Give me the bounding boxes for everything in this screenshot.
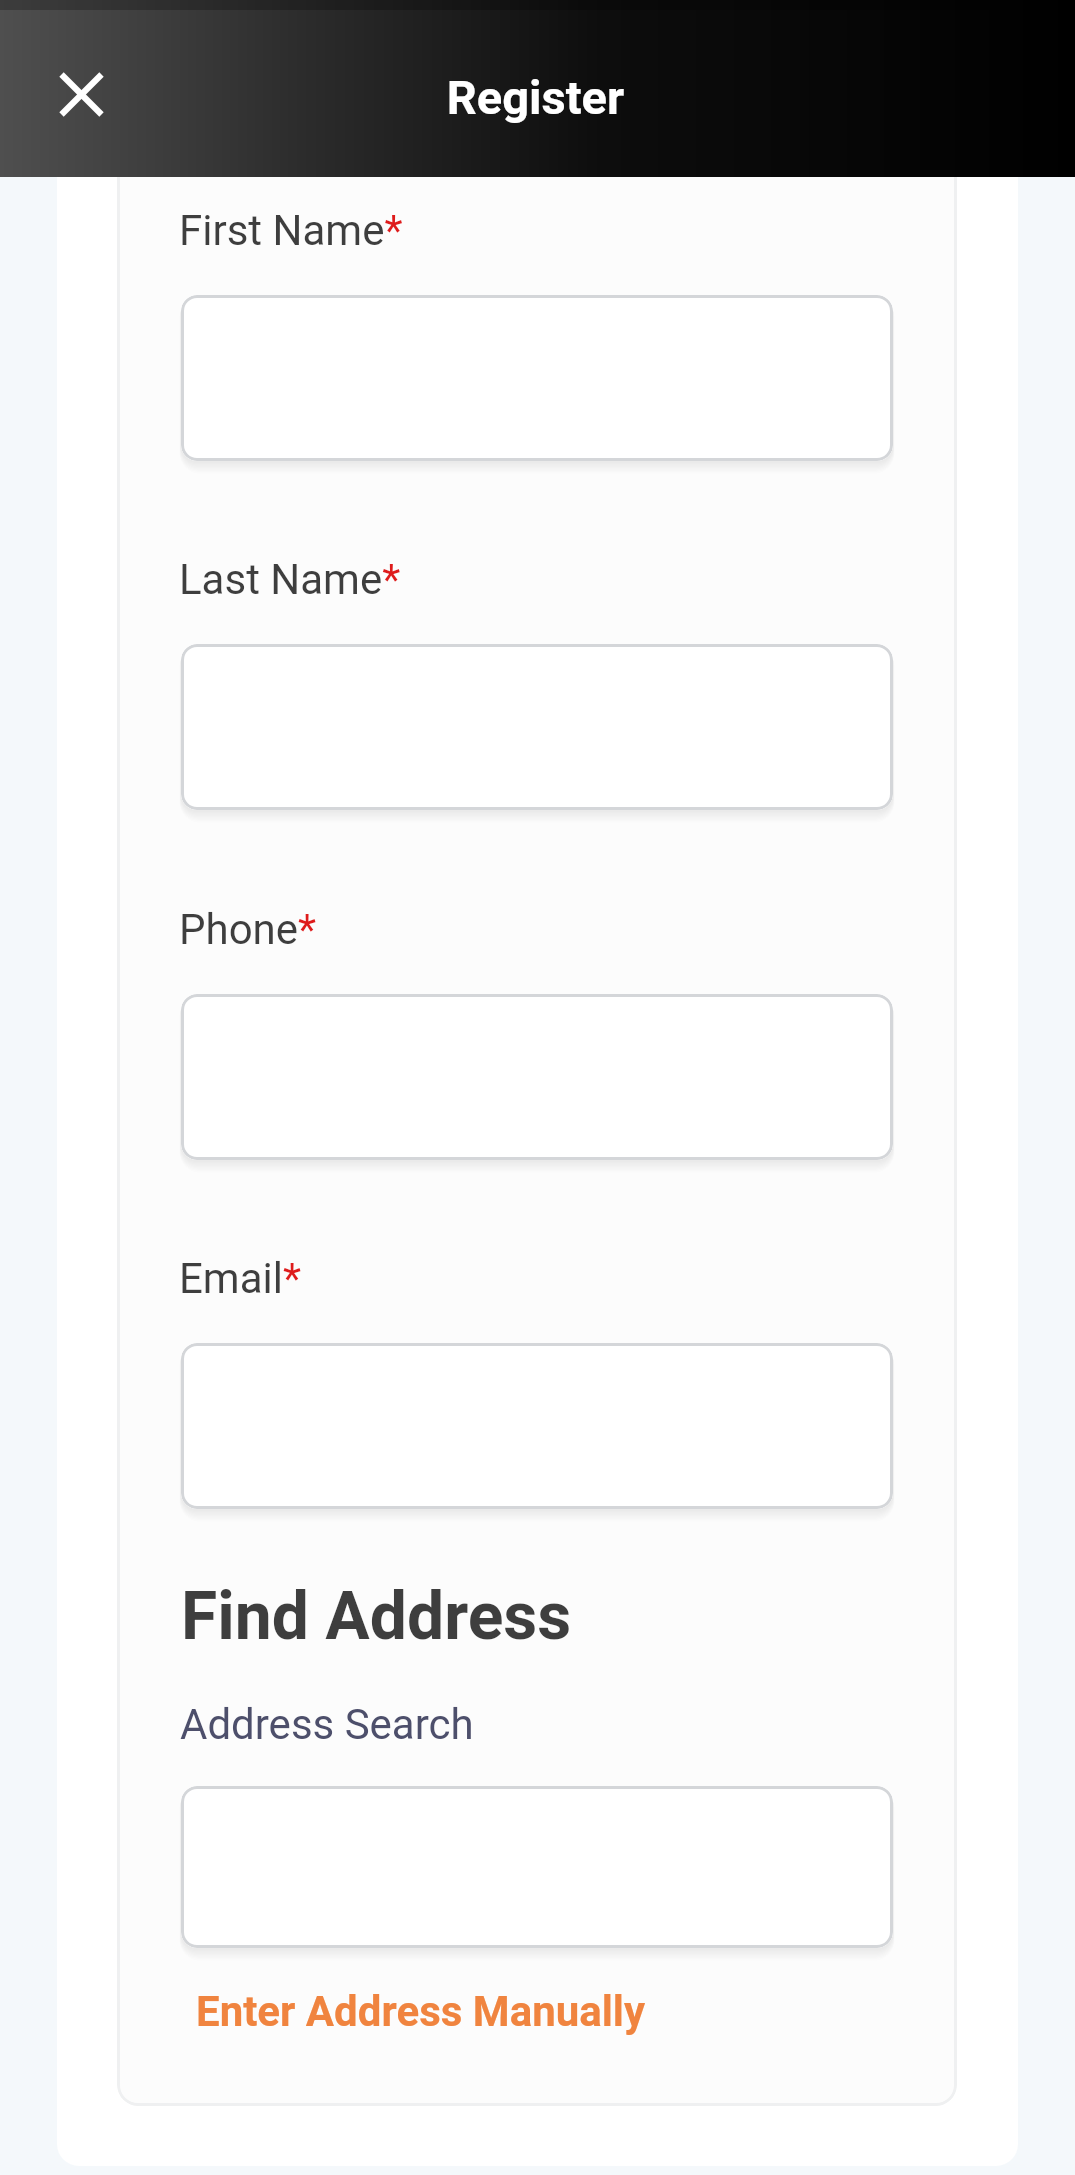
button[interactable] [181, 994, 893, 1160]
button[interactable] [181, 295, 893, 461]
staticText: Address Search [180, 1700, 474, 1749]
button[interactable] [181, 1343, 893, 1509]
staticText: Email* [179, 1254, 302, 1303]
staticText: First Name* [179, 206, 403, 255]
button[interactable]: Enter Address Manually [184, 1975, 658, 2048]
staticText: Register [0, 70, 1073, 125]
button[interactable] [181, 1786, 893, 1948]
staticText: Enter Address Manually [196, 1987, 646, 2036]
button[interactable]: Close [45, 58, 117, 130]
button[interactable] [181, 644, 893, 810]
staticText: Phone* [179, 905, 317, 954]
staticText: Last Name* [179, 555, 401, 604]
staticText: Find Address [181, 1578, 572, 1655]
